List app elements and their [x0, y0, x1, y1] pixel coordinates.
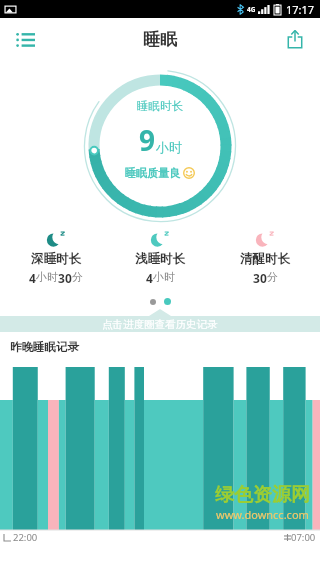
staticText: 3 [253, 270, 260, 286]
staticText: 4G [247, 5, 256, 14]
staticText: 07:00 [291, 531, 316, 544]
staticText: 分 [72, 270, 83, 284]
button[interactable]: 点击进度圈查看历史记录 [0, 316, 320, 332]
staticText: 睡眠质量良 [125, 166, 180, 180]
staticText: 浅睡时长 [135, 251, 185, 267]
staticText: 绿色资源网 [215, 483, 310, 507]
staticText: 3 [58, 270, 65, 286]
button[interactable] [164, 298, 171, 305]
staticText: 22:00 [13, 531, 38, 544]
staticText: 17:17 [286, 2, 315, 17]
button[interactable]: Share [278, 22, 312, 56]
staticText: 小 [153, 270, 164, 284]
staticText: 时 [47, 270, 58, 284]
staticText: 0 [260, 270, 267, 286]
staticText: 0 [65, 270, 72, 286]
staticText: www.downcc.com [216, 507, 309, 522]
staticText: 昨晚睡眠记录 [10, 340, 79, 354]
staticText: 清醒时长 [240, 251, 290, 267]
staticText: 时 [164, 270, 175, 284]
staticText: 4 [29, 270, 36, 286]
staticText: 4 [146, 270, 153, 286]
staticText: 深睡时长 [31, 251, 81, 267]
staticText: 睡眠 [143, 29, 177, 50]
button[interactable]: 清醒时长 [216, 230, 314, 286]
staticText: 9 [139, 121, 156, 159]
button[interactable]: Menu [8, 22, 42, 56]
button[interactable]: 浅睡时长 [111, 230, 209, 286]
staticText: 睡眠时长 [137, 99, 183, 113]
button[interactable]: 深睡时长 [7, 230, 105, 286]
staticText: 小 [36, 270, 47, 284]
staticText: 分 [267, 270, 278, 284]
button[interactable] [150, 299, 156, 305]
staticText: 小时 [156, 139, 182, 155]
staticText: 点击进度圈查看历史记录 [102, 318, 218, 331]
